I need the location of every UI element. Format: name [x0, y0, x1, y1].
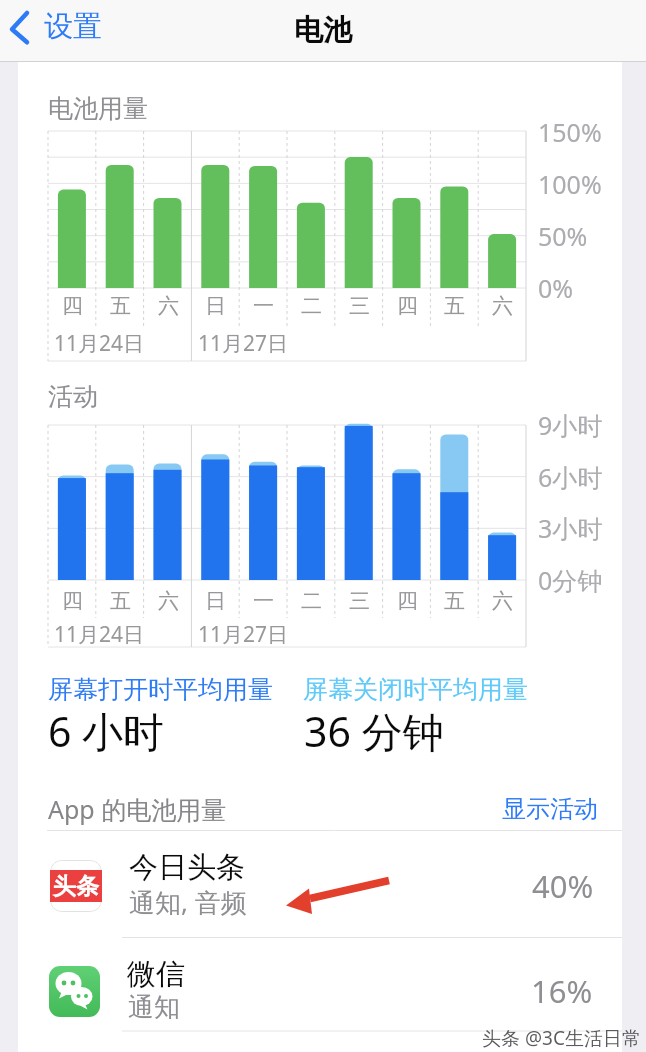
staticText: 100%: [538, 167, 602, 201]
staticText: 四: [62, 293, 83, 319]
staticText: 三: [349, 588, 370, 614]
staticText: 0%: [538, 271, 574, 305]
staticText: 四: [62, 588, 83, 614]
staticText: 11月24日: [54, 620, 145, 649]
staticText: 今日头条: [129, 849, 245, 886]
staticText: 通知, 音频: [129, 884, 247, 920]
staticText: 日: [205, 588, 226, 614]
staticText: 一: [253, 588, 274, 614]
staticText: 二: [301, 293, 322, 319]
staticText: 通知: [128, 991, 180, 1024]
staticText: 六: [158, 293, 179, 319]
staticText: 显示活动: [502, 794, 598, 824]
staticText: 二: [301, 588, 322, 614]
staticText: 微信: [127, 956, 185, 993]
staticText: 设置: [44, 8, 102, 45]
staticText: 11月27日: [198, 620, 289, 649]
staticText: 五: [110, 293, 131, 319]
staticText: 16%: [531, 970, 593, 1012]
staticText: 六: [492, 293, 513, 319]
staticText: 一: [253, 293, 274, 319]
staticText: 五: [444, 293, 465, 319]
button[interactable]: 微信: [18, 937, 622, 1032]
staticText: 50%: [538, 219, 588, 253]
staticText: 11月27日: [198, 329, 289, 358]
button[interactable]: 设置: [4, 6, 120, 56]
staticText: 36 分钟: [304, 703, 444, 759]
staticText: 五: [110, 588, 131, 614]
staticText: 150%: [538, 115, 602, 149]
staticText: 六: [492, 588, 513, 614]
staticText: 四: [397, 293, 418, 319]
staticText: 6 小时: [48, 703, 165, 759]
staticText: 四: [397, 588, 418, 614]
staticText: 头条: [53, 872, 99, 901]
staticText: 五: [444, 588, 465, 614]
staticText: 40%: [532, 865, 594, 907]
staticText: 头条 @3C生活日常: [482, 1025, 641, 1051]
staticText: 0分钟: [538, 563, 603, 597]
staticText: 电池: [294, 12, 352, 49]
staticText: 日: [205, 293, 226, 319]
staticText: 6小时: [538, 460, 603, 494]
staticText: 三: [349, 293, 370, 319]
staticText: 3小时: [538, 511, 603, 545]
staticText: App 的电池用量: [48, 792, 227, 826]
staticText: 电池用量: [48, 93, 148, 124]
button[interactable]: 头条: [18, 831, 622, 937]
staticText: 屏幕打开时平均用量: [48, 674, 273, 705]
button[interactable]: 显示活动: [468, 785, 598, 833]
staticText: 活动: [48, 381, 98, 412]
staticText: 六: [158, 588, 179, 614]
staticText: 9小时: [538, 408, 603, 442]
staticText: 屏幕关闭时平均用量: [303, 674, 528, 705]
staticText: 11月24日: [54, 329, 145, 358]
